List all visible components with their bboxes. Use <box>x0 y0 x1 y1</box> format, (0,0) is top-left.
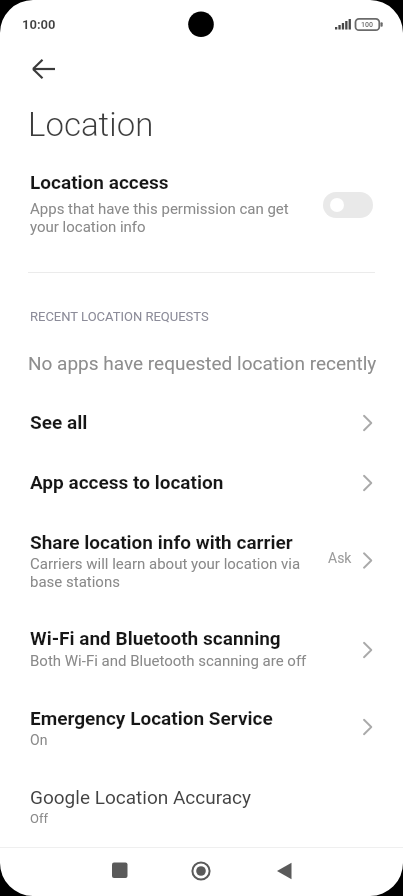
staticText: Both Wi-Fi and Bluetooth scanning are of… <box>30 652 307 670</box>
button[interactable]: Location access <box>0 165 403 245</box>
staticText: On <box>30 732 48 748</box>
staticText: Google Location Accuracy <box>30 786 252 808</box>
staticText: Emergency Location Service <box>30 707 273 729</box>
staticText: Ask <box>328 550 352 566</box>
button[interactable]: See all <box>0 393 403 453</box>
button[interactable] <box>267 854 300 887</box>
staticText: Share location info with carrier <box>30 531 293 553</box>
button[interactable]: Wi-Fi and Bluetooth scanning <box>0 608 403 688</box>
button[interactable]: Emergency Location Service <box>0 688 403 768</box>
button[interactable]: Google Location Accuracy <box>0 768 403 847</box>
button[interactable] <box>103 854 136 887</box>
button[interactable]: Share location info with carrier <box>0 513 403 608</box>
button[interactable]: App access to location <box>0 453 403 513</box>
staticText: RECENT LOCATION REQUESTS <box>30 309 209 324</box>
staticText: Carriers will learn about your location … <box>30 555 301 591</box>
staticText: 10:00 <box>22 17 56 32</box>
staticText: See all <box>30 411 88 433</box>
staticText: Apps that have this permission can get y… <box>30 200 289 236</box>
staticText: App access to location <box>30 471 224 493</box>
staticText: No apps have requested location recently <box>28 352 377 374</box>
staticText: Off <box>30 811 48 826</box>
button[interactable] <box>184 854 218 888</box>
staticText: 100 <box>361 21 373 29</box>
staticText: Location <box>28 105 154 144</box>
staticText: Wi-Fi and Bluetooth scanning <box>30 627 281 649</box>
staticText: Location access <box>30 171 169 193</box>
button[interactable] <box>18 52 66 86</box>
